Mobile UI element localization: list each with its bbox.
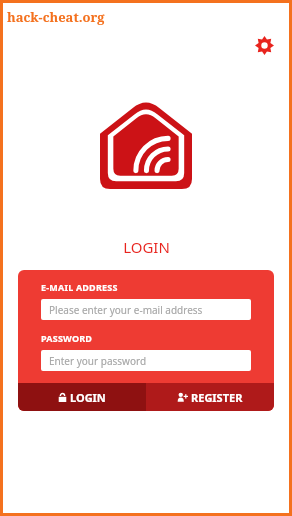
staticText: LOGIN [123,237,170,257]
staticText: REGISTER [191,390,243,405]
staticText: Please enter your e-mail address [49,303,203,317]
staticText: PASSWORD [41,332,93,344]
staticText: LOGIN [70,390,106,405]
staticText: Enter your password [49,354,147,368]
staticText: hack-cheat.org [7,8,105,26]
staticText: E-MAIL ADDRESS [41,281,118,293]
button[interactable]: LOGIN [18,383,146,411]
button[interactable]: REGISTER [146,383,274,411]
button[interactable]: Please enter your e-mail address [41,299,251,320]
button[interactable]: Settings [248,29,280,61]
button[interactable]: Enter your password [41,350,251,371]
